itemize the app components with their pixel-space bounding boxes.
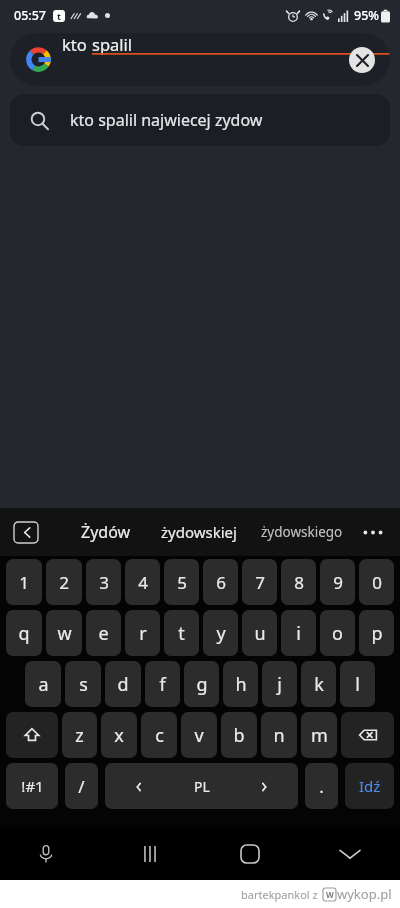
button[interactable]: Hide keyboard [300, 828, 400, 880]
staticText: f [159, 672, 166, 697]
staticText: 0 [372, 571, 382, 594]
button[interactable]: j [262, 661, 297, 707]
button[interactable]: s [65, 661, 101, 707]
staticText: Żydów [81, 521, 131, 543]
button[interactable]: Shift [6, 712, 58, 758]
staticText: 4 [138, 571, 148, 594]
staticText: PL [194, 777, 210, 796]
staticText: e [98, 621, 109, 646]
staticText: t [57, 10, 61, 22]
staticText: 05:57 [14, 7, 47, 24]
button[interactable]: m [301, 712, 337, 758]
button[interactable]: żydowskiego [249, 523, 354, 541]
button[interactable]: p [359, 610, 394, 656]
button[interactable]: n [261, 712, 297, 758]
staticText: 5 [177, 571, 187, 594]
button[interactable]: 4 [125, 559, 160, 605]
button[interactable]: e [86, 610, 121, 656]
staticText: 9 [333, 571, 343, 594]
button[interactable]: 8 [281, 559, 316, 605]
staticText: 7 [255, 571, 265, 594]
staticText: !#1 [21, 776, 44, 796]
button[interactable]: 0 [359, 559, 394, 605]
button[interactable]: żydowskiej [148, 522, 249, 542]
button[interactable]: 7 [242, 559, 277, 605]
staticText: m [311, 723, 328, 748]
button[interactable]: 3 [86, 559, 121, 605]
button[interactable]: b [221, 712, 257, 758]
staticText: kto spalil najwiecej zydow [70, 109, 263, 131]
button[interactable]: x [101, 712, 137, 758]
button[interactable]: 2 [46, 559, 82, 605]
staticText: d [117, 672, 129, 697]
button[interactable]: Żydów [64, 521, 148, 543]
staticText: y [216, 621, 226, 646]
staticText: żydowskiego [261, 523, 343, 541]
button[interactable]: kto [10, 33, 390, 86]
staticText: 95% [354, 7, 379, 24]
button[interactable]: a [25, 661, 61, 707]
staticText: x [114, 723, 124, 748]
button[interactable]: kto spalil najwiecej zydow [10, 94, 390, 146]
button[interactable]: Idź [345, 763, 394, 809]
staticText: wykop.pl [337, 885, 392, 903]
button[interactable]: 6 [203, 559, 238, 605]
button[interactable]: / [65, 763, 98, 809]
staticText: / [78, 775, 85, 798]
button[interactable]: 9 [320, 559, 355, 605]
button[interactable]: More suggestions [358, 517, 388, 547]
staticText: g [196, 672, 208, 697]
staticText: a [38, 672, 49, 697]
button[interactable]: l [340, 661, 375, 707]
button[interactable]: w [46, 610, 82, 656]
button[interactable]: q [6, 610, 42, 656]
button[interactable]: Backspace [341, 712, 394, 758]
staticText: v [194, 723, 204, 748]
staticText: żydowskiej [161, 522, 237, 542]
button[interactable]: 1 [6, 559, 42, 605]
staticText: k [314, 672, 324, 697]
button[interactable]: g [184, 661, 219, 707]
button[interactable]: 5 [164, 559, 199, 605]
button[interactable]: Space [105, 763, 298, 809]
button[interactable]: d [105, 661, 141, 707]
button[interactable]: h [223, 661, 258, 707]
staticText: u [254, 621, 266, 646]
staticText: i [296, 621, 301, 646]
button[interactable]: f [145, 661, 180, 707]
button[interactable]: t [164, 610, 199, 656]
staticText: . [319, 775, 324, 798]
staticText: 1 [19, 571, 29, 594]
button[interactable]: Clear search [349, 47, 375, 73]
button[interactable]: r [125, 610, 160, 656]
button[interactable]: k [301, 661, 336, 707]
button[interactable]: o [320, 610, 355, 656]
staticText: c [155, 723, 164, 748]
staticText: s [79, 672, 88, 697]
staticText: 6 [216, 571, 226, 594]
button[interactable]: . [305, 763, 338, 809]
button[interactable]: i [281, 610, 316, 656]
button[interactable]: z [62, 712, 97, 758]
button[interactable]: !#1 [6, 763, 58, 809]
staticText: b [233, 723, 245, 748]
button[interactable]: Home [200, 828, 300, 880]
staticText: 2 [59, 571, 69, 594]
button[interactable]: Voice input [0, 828, 100, 880]
button[interactable]: Previous suggestions [14, 522, 38, 543]
button[interactable]: v [181, 712, 217, 758]
button[interactable]: Recent apps [100, 828, 200, 880]
staticText: bartekpankol z [241, 887, 318, 902]
staticText: Idź [359, 776, 381, 796]
button[interactable]: y [203, 610, 238, 656]
staticText: r [139, 621, 147, 646]
staticText: t [178, 621, 185, 646]
staticText: p [371, 621, 383, 646]
staticText: o [332, 621, 343, 646]
staticText: z [75, 723, 84, 748]
button[interactable]: c [141, 712, 177, 758]
staticText: j [277, 672, 282, 697]
button[interactable]: u [242, 610, 277, 656]
staticText: 3 [99, 571, 109, 594]
